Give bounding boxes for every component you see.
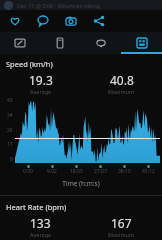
staticText: Dec 11 @ 2:00 - Mountain biking [17, 2, 101, 9]
button[interactable]: Laps [80, 32, 121, 54]
staticText: 40.8 [110, 72, 134, 88]
button[interactable]: Dec 11 @ 2:00 - Mountain biking [0, 0, 162, 10]
staticText: 36:10 [118, 168, 131, 175]
staticText: Average [30, 88, 52, 95]
staticText: 34 [7, 112, 13, 119]
button[interactable]: 19.3 [0, 72, 81, 95]
button[interactable]: 167 [81, 215, 162, 238]
staticText: Average [30, 231, 52, 238]
button[interactable]: Comment [36, 14, 50, 28]
button[interactable]: Like [8, 14, 22, 28]
staticText: 9:02 [47, 168, 57, 175]
staticText: 0:00 [23, 168, 33, 175]
staticText: Speed (km/h) [6, 59, 53, 69]
staticText: Time (h:m:s) [0, 179, 162, 188]
staticText: Maximum [108, 231, 135, 238]
staticText: 26 [7, 127, 13, 134]
button[interactable]: Share [92, 14, 106, 28]
staticText: 17 [7, 141, 13, 148]
staticText: Maximum [108, 88, 135, 95]
staticText: 18:05 [70, 168, 83, 175]
staticText: 19.3 [29, 72, 53, 88]
button[interactable]: Charts [121, 32, 162, 54]
staticText: 45:12 [142, 168, 155, 175]
staticText: Heart Rate (bpm) [6, 202, 67, 212]
staticText: 43 [7, 97, 13, 104]
button[interactable]: Map [0, 32, 40, 54]
button[interactable]: Photo [64, 14, 78, 28]
staticText: 167 [111, 215, 132, 231]
staticText: 27:07 [94, 168, 107, 175]
button[interactable]: 133 [0, 215, 81, 238]
staticText: 133 [30, 215, 51, 231]
button[interactable]: Details [40, 32, 80, 54]
staticText: 9 [10, 156, 13, 163]
button[interactable]: 40.8 [81, 72, 162, 95]
